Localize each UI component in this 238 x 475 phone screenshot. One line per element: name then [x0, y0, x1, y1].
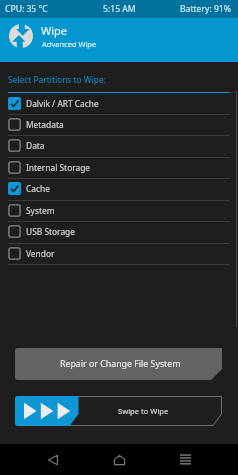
staticText: CPU: 35 °C [5, 3, 48, 15]
button[interactable]: Home [103, 444, 136, 475]
staticText: 5:15 AM [103, 3, 136, 15]
button[interactable]: Back [36, 444, 69, 475]
button[interactable]: Data [0, 136, 238, 157]
staticText: Wipe [41, 23, 68, 38]
staticText: Repair or Change File System [60, 358, 181, 370]
button[interactable]: Vendor [0, 244, 238, 265]
staticText: Advanced Wipe [42, 39, 97, 49]
staticText: Swipe to Wipe [118, 406, 169, 416]
button[interactable]: Swipe to Wipe [15, 396, 222, 426]
button[interactable]: Cache [0, 179, 238, 200]
staticText: Internal Storage [26, 162, 91, 173]
button[interactable]: Repair or Change File System [15, 348, 222, 380]
staticText: Battery: 91% [180, 3, 231, 15]
staticText: Vendor [26, 248, 55, 259]
staticText: Metadata [26, 119, 64, 130]
button[interactable]: Internal Storage [0, 158, 238, 179]
button[interactable]: Metadata [0, 115, 238, 136]
staticText: Dalvik / ART Cache [26, 98, 99, 109]
staticText: Data [26, 140, 45, 151]
button[interactable]: Dalvik / ART Cache [0, 94, 238, 115]
button[interactable]: USB Storage [0, 222, 238, 243]
staticText: System [26, 205, 55, 216]
button[interactable]: System [0, 201, 238, 222]
staticText: Cache [26, 183, 50, 194]
staticText: USB Storage [26, 226, 75, 237]
staticText: Select Partitions to Wipe: [8, 74, 106, 85]
button[interactable]: Recent apps [169, 444, 202, 475]
